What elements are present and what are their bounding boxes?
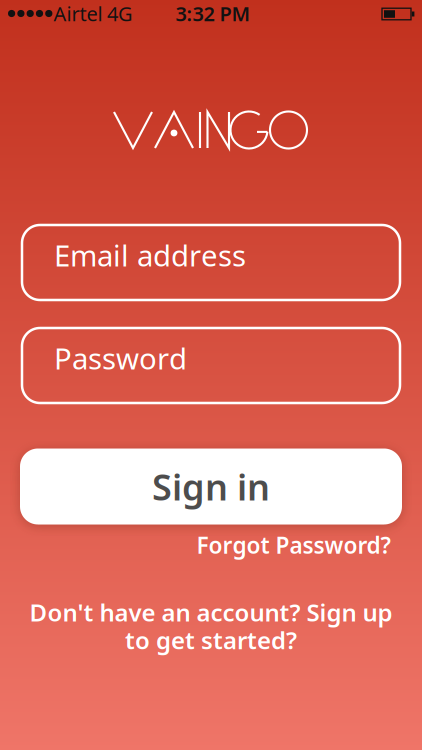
staticText: Password [54,338,187,377]
staticText: to get started? [125,624,297,656]
button[interactable]: Email address [22,225,400,300]
staticText: 3:32 PM [175,0,250,27]
button[interactable]: Forgot Password? [196,530,390,560]
staticText: Sign in [152,463,270,510]
button[interactable]: Password [22,328,400,403]
staticText: Airtel [53,0,102,27]
staticText: Email address [54,235,246,274]
staticText: Don't have an account? Sign up [29,596,392,628]
staticText: 4G [107,0,133,27]
button[interactable]: Don't have an account? Sign up [29,596,392,656]
staticText: Forgot Password? [196,530,390,560]
button[interactable]: Sign in [20,448,402,524]
